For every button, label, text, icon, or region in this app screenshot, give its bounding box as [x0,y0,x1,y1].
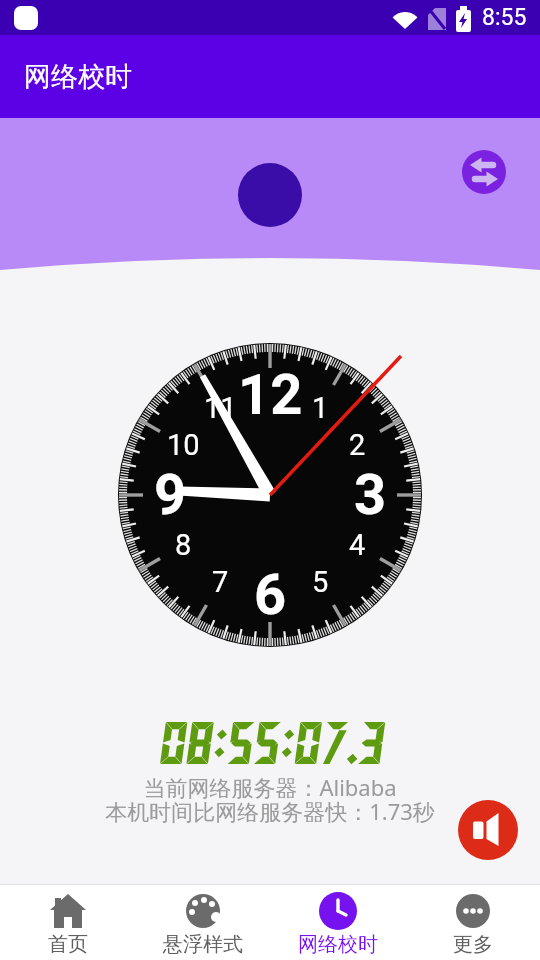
staticText: 6 [254,562,287,628]
staticText: 当前网络服务器：Alibaba [0,772,540,802]
button[interactable]: 悬浮样式 [135,884,270,960]
staticText: 5 [312,565,329,599]
staticText: 悬浮样式 [163,932,243,957]
staticText: 8 [175,528,192,562]
staticText: 更多 [453,932,493,957]
staticText: 9 [154,462,187,528]
staticText: 11 [204,391,237,425]
button[interactable]: 首页 [0,884,135,960]
staticText: 10 [167,428,200,462]
button[interactable]: 网络校时 [270,884,405,960]
staticText: 2 [349,428,366,462]
staticText: 本机时间比网络服务器快：1.73秒 [0,796,540,826]
button[interactable] [462,150,506,194]
staticText: 3 [354,462,387,528]
staticText: 12 [238,362,303,428]
staticText: 7 [212,565,229,599]
staticText: 网络校时 [24,60,132,94]
staticText: 首页 [48,932,88,957]
button[interactable]: 更多 [405,884,540,960]
button[interactable] [458,800,518,860]
staticText: 网络校时 [298,932,378,957]
staticText: 4 [349,528,366,562]
staticText: 8:55 [482,4,527,31]
staticText: 1 [312,391,329,425]
